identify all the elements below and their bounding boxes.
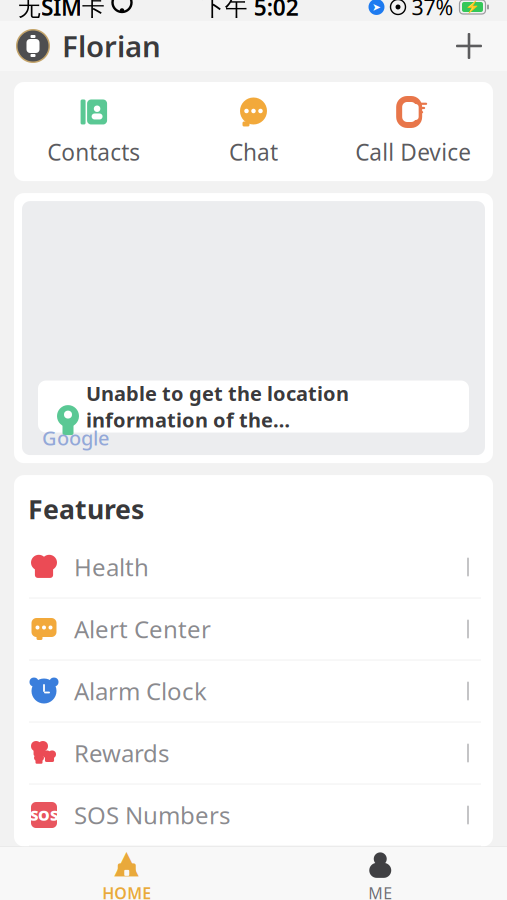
- button[interactable]: ▲: [0, 851, 253, 900]
- staticText: SOS Numbers: [74, 799, 230, 831]
- button[interactable]: Contacts: [14, 96, 174, 167]
- button[interactable]: Call Device: [333, 96, 493, 167]
- staticText: Health: [74, 551, 149, 583]
- button[interactable]: Health: [14, 536, 493, 598]
- staticText: Call Device: [355, 137, 471, 167]
- staticText: Alert Center: [74, 613, 211, 645]
- button[interactable]: Chat: [174, 96, 333, 167]
- staticText: 37%: [411, 0, 453, 21]
- staticText: ME: [368, 882, 392, 900]
- staticText: Florian: [62, 26, 161, 65]
- staticText: Chat: [229, 137, 278, 167]
- button[interactable]: ME: [253, 851, 507, 900]
- staticText: Google: [42, 424, 109, 451]
- staticText: Alarm Clock: [74, 675, 207, 707]
- staticText: Features: [28, 491, 144, 526]
- staticText: ▲: [114, 843, 139, 879]
- staticText: ⚡: [465, 0, 480, 14]
- staticText: HOME: [102, 882, 151, 900]
- button[interactable]: Rewards: [14, 722, 493, 784]
- button[interactable]: Add: [447, 24, 491, 68]
- button[interactable]: Alert Center: [14, 598, 493, 660]
- staticText: Contacts: [47, 137, 140, 167]
- button[interactable]: SOS: [14, 784, 493, 846]
- button[interactable]: Florian: [16, 26, 161, 65]
- staticText: 下午 5:02: [202, 0, 299, 22]
- staticText: ➤: [372, 1, 381, 13]
- staticText: 无SIM卡: [18, 0, 105, 22]
- button[interactable]: Alarm Clock: [14, 660, 493, 722]
- staticText: Rewards: [74, 737, 169, 769]
- staticText: Unable to get the location information o…: [86, 380, 349, 433]
- staticText: SOS: [30, 805, 58, 825]
